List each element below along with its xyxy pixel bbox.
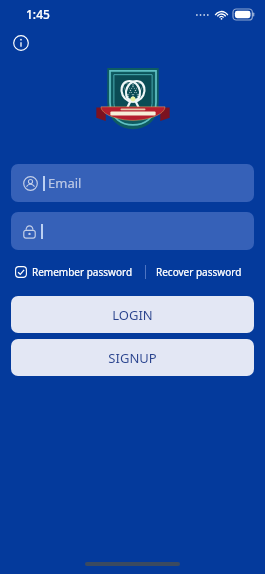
staticText: SIGNUP	[108, 349, 157, 367]
button[interactable]: SIGNUP	[11, 339, 254, 376]
button[interactable]: Information	[8, 30, 34, 56]
button[interactable]: Recover password	[152, 263, 246, 281]
staticText: 1:45	[26, 6, 50, 22]
button[interactable]: LOGIN	[11, 296, 254, 333]
staticText: Recover password	[156, 265, 242, 279]
staticText: LOGIN	[112, 306, 153, 324]
button[interactable]: Remember password	[13, 264, 135, 280]
button[interactable]	[11, 212, 254, 250]
button[interactable]: Email	[11, 164, 254, 202]
staticText: Email	[48, 174, 82, 192]
staticText: Remember password	[32, 265, 133, 279]
